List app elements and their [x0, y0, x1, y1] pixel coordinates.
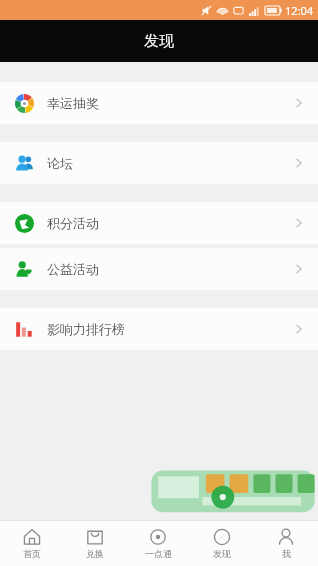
button[interactable]: 兑换	[63, 521, 126, 566]
other: 一点通	[149, 528, 167, 546]
button[interactable]: 公益活动	[0, 248, 318, 290]
button[interactable]: 论坛	[0, 142, 318, 184]
staticText: 论坛	[47, 155, 73, 171]
staticText: 幸运抽奖	[47, 95, 99, 111]
staticText: 首页	[23, 548, 41, 559]
button[interactable]: 发现	[190, 521, 254, 566]
button[interactable]: 幸运抽奖	[0, 82, 318, 124]
button[interactable]: 首页	[0, 521, 63, 566]
other: 首页	[23, 528, 41, 546]
staticText: 公益活动	[47, 261, 99, 277]
other: 我	[277, 528, 295, 546]
staticText: 发现	[144, 32, 174, 51]
other: 发现	[213, 528, 231, 546]
button[interactable]: 一点通	[126, 521, 190, 566]
button[interactable]: 影响力排行榜	[0, 308, 318, 350]
staticText: 积分活动	[47, 215, 99, 231]
button[interactable]: 积分活动	[0, 202, 318, 244]
staticText: 兑换	[86, 548, 104, 559]
staticText: 12:04	[285, 3, 314, 18]
staticText: 一点通	[145, 548, 172, 559]
staticText: 我	[282, 548, 291, 559]
staticText: 发现	[213, 548, 231, 559]
button[interactable]: 我	[254, 521, 318, 566]
other: 兑换	[86, 528, 104, 546]
staticText: 影响力排行榜	[47, 321, 125, 337]
